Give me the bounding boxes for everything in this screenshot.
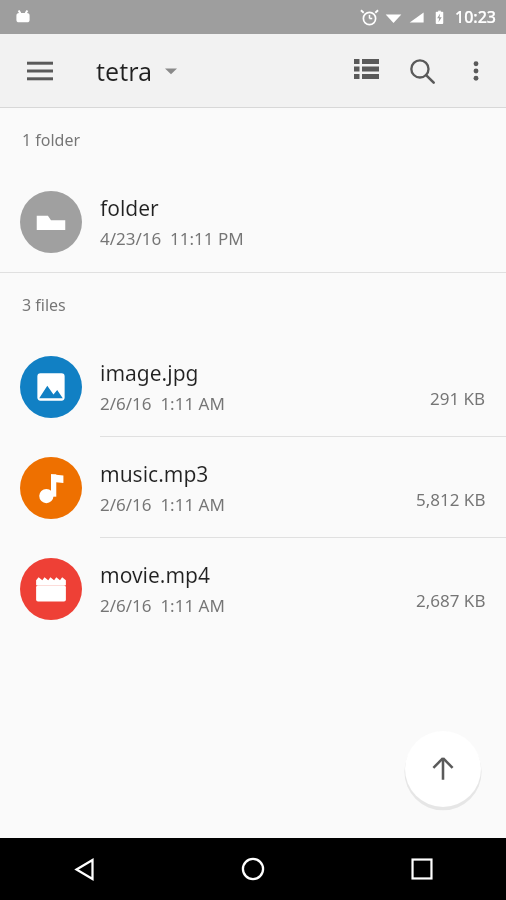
button[interactable]: movie.mp4 — [0, 538, 506, 639]
button[interactable]: List view — [338, 43, 394, 99]
button[interactable]: tetra — [96, 54, 177, 88]
button[interactable]: Navigation menu — [10, 41, 70, 101]
button[interactable]: Go up — [405, 731, 481, 807]
staticText: 5,812 KB — [416, 488, 486, 511]
staticText: 2,687 KB — [416, 589, 486, 612]
button[interactable]: More options — [450, 45, 502, 97]
staticText: movie.mp4 — [100, 561, 211, 590]
button[interactable]: music.mp3 — [0, 437, 506, 538]
staticText: music.mp3 — [100, 460, 209, 489]
staticText: 2/6/16 1:11 AM — [100, 594, 225, 617]
button[interactable]: Recents — [337, 838, 506, 900]
staticText: 1 folder — [22, 129, 81, 151]
staticText: 291 KB — [430, 387, 486, 410]
button[interactable]: Back — [0, 838, 168, 900]
staticText: 2/6/16 1:11 AM — [100, 392, 225, 415]
staticText: 4/23/16 11:11 PM — [100, 227, 244, 250]
staticText: 10:23 — [455, 6, 496, 28]
staticText: 3 files — [22, 294, 66, 316]
staticText: 2/6/16 1:11 AM — [100, 493, 225, 516]
button[interactable]: Home — [168, 838, 337, 900]
button[interactable]: folder — [0, 171, 506, 272]
staticText: folder — [100, 194, 159, 223]
button[interactable]: Search — [394, 43, 450, 99]
staticText: tetra — [96, 54, 153, 88]
staticText: image.jpg — [100, 359, 199, 388]
button[interactable]: image.jpg — [0, 336, 506, 437]
